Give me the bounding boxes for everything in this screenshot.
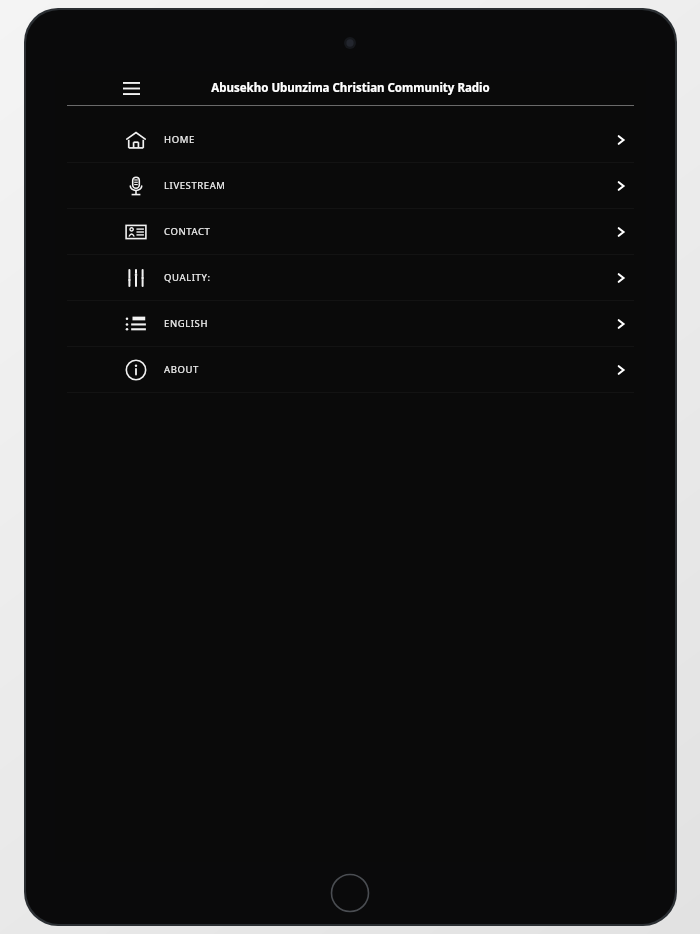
- staticText: CONTACT: [164, 225, 211, 238]
- button[interactable]: QUALITY:: [55, 255, 646, 300]
- button[interactable]: ABOUT: [55, 347, 646, 392]
- staticText: ENGLISH: [164, 317, 209, 330]
- button[interactable]: LIVESTREAM: [55, 163, 646, 208]
- staticText: HOME: [164, 133, 195, 146]
- button[interactable]: CONTACT: [55, 209, 646, 254]
- staticText: LIVESTREAM: [164, 179, 226, 192]
- button[interactable]: Open navigation menu: [114, 71, 148, 105]
- button[interactable]: ENGLISH: [55, 301, 646, 346]
- staticText: Abusekho Ubunzima Christian Community Ra…: [211, 80, 490, 96]
- staticText: ABOUT: [164, 363, 199, 376]
- staticText: QUALITY:: [164, 271, 211, 284]
- button[interactable]: HOME: [55, 117, 646, 162]
